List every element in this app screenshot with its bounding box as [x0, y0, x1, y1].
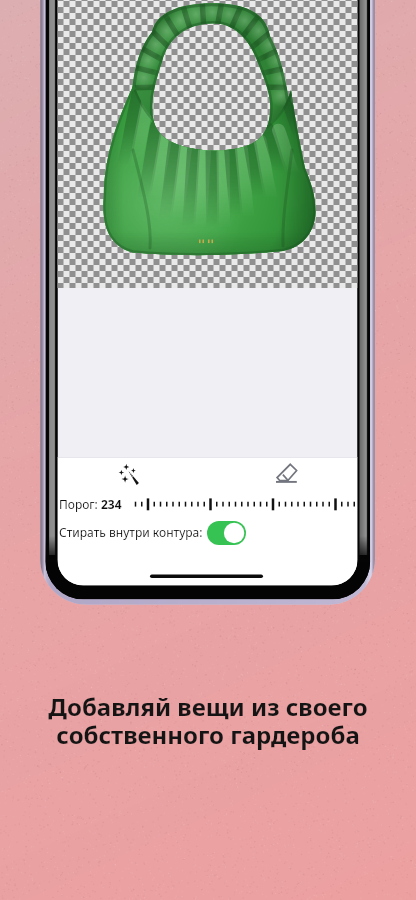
- button[interactable]: Erase inside contour: [207, 521, 246, 545]
- button[interactable]: Eraser: [265, 458, 308, 491]
- staticText: Порог: 234: [59, 496, 122, 512]
- staticText: Добавляй вещи из своего собственного гар…: [0, 690, 416, 751]
- button[interactable]: Magic wand auto select: [107, 458, 150, 491]
- staticText: Стирать внутри контура:: [59, 524, 203, 540]
- button[interactable]: Threshold slider: [131, 494, 358, 515]
